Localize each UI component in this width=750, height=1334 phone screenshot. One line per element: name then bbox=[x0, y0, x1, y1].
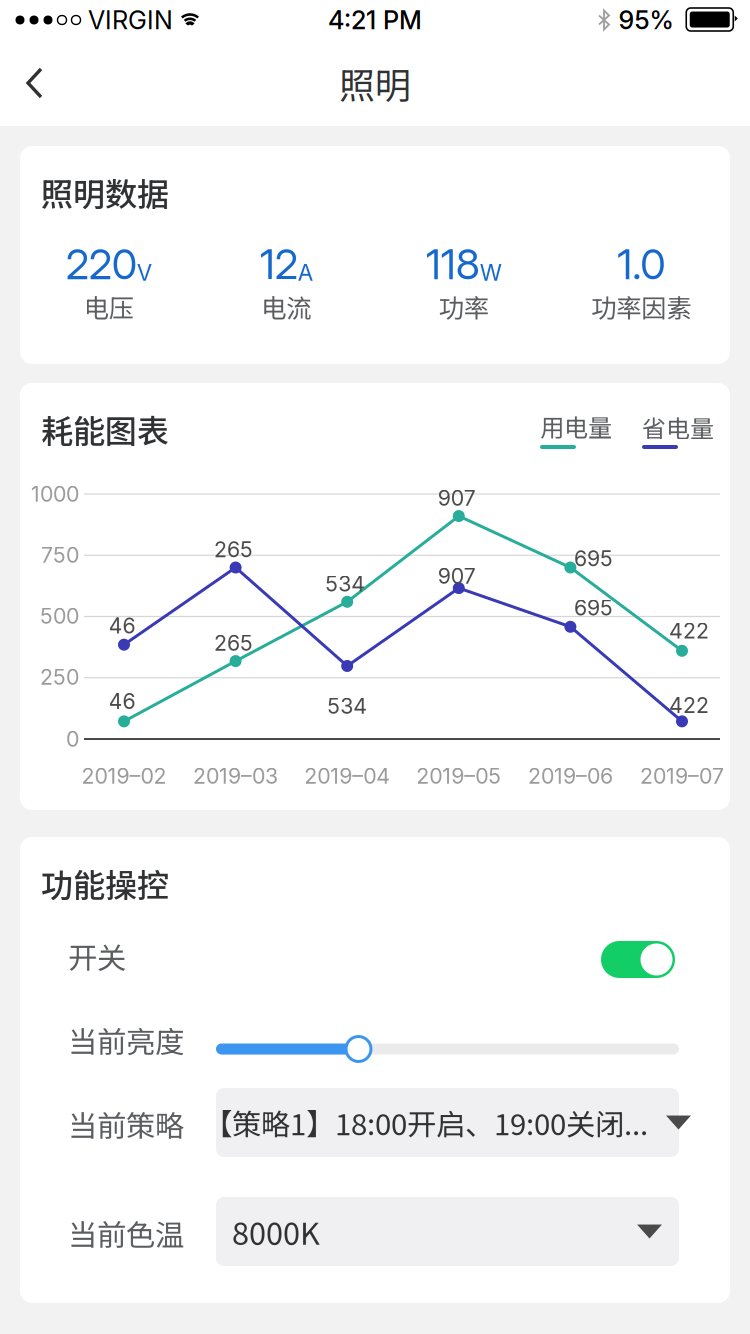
staticText: 电压 bbox=[84, 288, 134, 325]
staticText: A bbox=[298, 259, 313, 286]
staticText: 省电量 bbox=[642, 410, 714, 444]
staticText: 1.0 bbox=[617, 239, 665, 289]
staticText: 开关 bbox=[68, 935, 126, 977]
staticText: 250 bbox=[40, 664, 79, 690]
staticText: 当前色温 bbox=[68, 1212, 184, 1254]
staticText: 用电量 bbox=[540, 409, 612, 443]
staticText: VIRGIN bbox=[88, 5, 173, 35]
staticText: 照明 bbox=[339, 57, 411, 109]
staticText: 265 bbox=[214, 537, 253, 562]
staticText: 46 bbox=[108, 613, 135, 639]
staticText: 2019–07 bbox=[640, 763, 724, 789]
staticText: 695 bbox=[574, 546, 613, 571]
staticText: 907 bbox=[438, 563, 476, 589]
staticText: 功率因素 bbox=[591, 288, 691, 325]
staticText: 【策略1】18:00开启、19:00关闭... bbox=[203, 1101, 648, 1144]
staticText: 2019–03 bbox=[193, 763, 278, 789]
button[interactable]: 8000K bbox=[216, 1197, 679, 1266]
staticText: 118 bbox=[426, 239, 480, 289]
staticText: 4:21 PM bbox=[328, 5, 422, 35]
button[interactable]: 【策略1】18:00开启、19:00关闭... bbox=[216, 1088, 679, 1157]
staticText: 12 bbox=[260, 239, 298, 289]
staticText: 46 bbox=[108, 688, 135, 714]
staticText: 95% bbox=[618, 5, 673, 35]
staticText: 695 bbox=[574, 595, 613, 621]
staticText: 功率 bbox=[439, 288, 489, 325]
staticText: 265 bbox=[214, 630, 253, 656]
staticText: 534 bbox=[325, 571, 365, 597]
staticText: 8000K bbox=[232, 1209, 320, 1254]
button[interactable]: Power switch bbox=[601, 941, 675, 978]
staticText: 2019–06 bbox=[528, 763, 613, 789]
staticText: 功能操控 bbox=[41, 860, 169, 906]
staticText: 2019–05 bbox=[416, 763, 501, 789]
staticText: 2019–04 bbox=[304, 763, 390, 789]
button[interactable]: Back bbox=[0, 40, 70, 126]
staticText: 422 bbox=[669, 618, 709, 644]
staticText: V bbox=[137, 259, 152, 286]
staticText: 当前亮度 bbox=[68, 1019, 184, 1061]
staticText: 534 bbox=[327, 693, 367, 719]
staticText: W bbox=[480, 259, 502, 286]
staticText: 照明数据 bbox=[41, 169, 169, 215]
staticText: 2019–02 bbox=[81, 763, 166, 789]
staticText: 1000 bbox=[31, 481, 79, 507]
staticText: 耗能图表 bbox=[41, 406, 169, 452]
staticText: 当前策略 bbox=[68, 1103, 184, 1145]
staticText: 500 bbox=[40, 603, 79, 629]
staticText: 907 bbox=[438, 485, 476, 511]
staticText: 422 bbox=[669, 692, 709, 718]
staticText: 0 bbox=[66, 726, 79, 752]
staticText: 电流 bbox=[261, 288, 311, 325]
staticText: 750 bbox=[41, 542, 79, 568]
staticText: 220 bbox=[66, 239, 137, 289]
